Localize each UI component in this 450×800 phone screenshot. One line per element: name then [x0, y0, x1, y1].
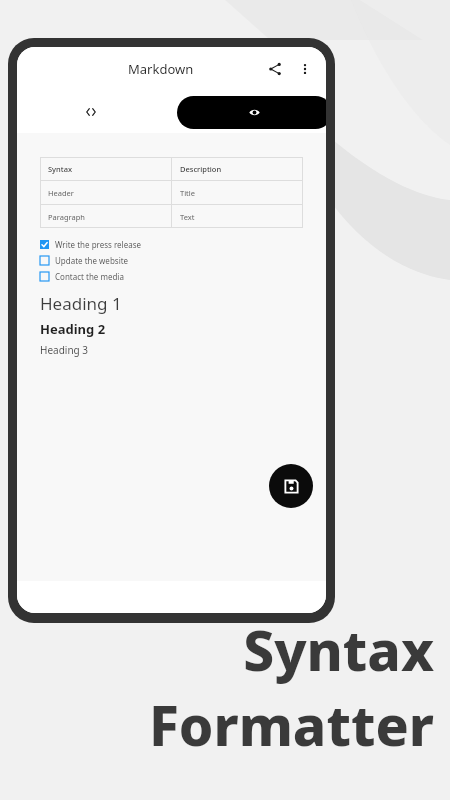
staticText: Syntax: [0, 612, 434, 687]
button[interactable]: Source code: [62, 96, 120, 128]
button[interactable]: Share: [260, 54, 290, 84]
staticText: Paragraph: [48, 212, 85, 222]
staticText: Markdown: [128, 60, 194, 78]
button[interactable]: Write the press release: [40, 239, 146, 250]
button[interactable]: More options: [290, 54, 320, 84]
staticText: Contact the media: [55, 271, 124, 282]
button[interactable]: Contact the media: [40, 271, 128, 282]
staticText: Text: [180, 212, 195, 222]
staticText: Description: [180, 164, 222, 174]
staticText: Write the press release: [55, 239, 142, 250]
button[interactable]: Save: [269, 464, 313, 508]
staticText: Heading 3: [40, 343, 89, 357]
staticText: Update the website: [55, 255, 129, 266]
button[interactable]: Update the website: [40, 255, 133, 266]
staticText: Syntax: [48, 164, 73, 174]
staticText: Heading 1: [40, 292, 122, 315]
button[interactable]: Preview: [177, 96, 326, 129]
staticText: Title: [180, 188, 195, 198]
staticText: Heading 2: [40, 320, 106, 338]
staticText: Formatter: [0, 687, 434, 762]
staticText: Header: [48, 188, 74, 198]
